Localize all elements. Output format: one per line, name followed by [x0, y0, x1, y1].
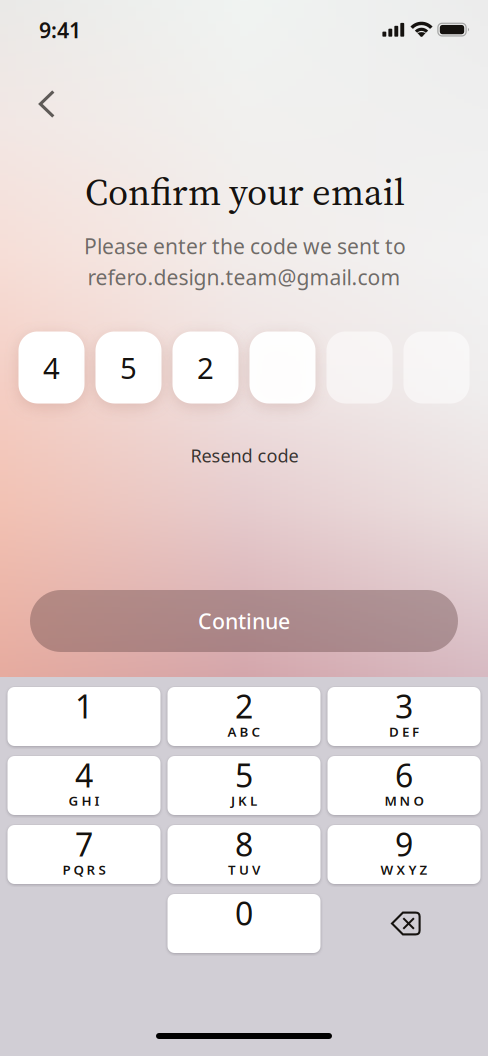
staticText: 3	[395, 684, 413, 728]
button[interactable]: Resend code	[172, 434, 316, 477]
button[interactable]: 9	[327, 825, 480, 884]
staticText: 6	[395, 753, 413, 797]
staticText: 9:41	[39, 15, 81, 45]
staticText: T U V	[228, 860, 260, 879]
button[interactable]: 8	[167, 825, 320, 884]
staticText: P Q R S	[62, 860, 105, 879]
staticText: 8	[235, 822, 253, 866]
staticText: J K L	[231, 791, 257, 810]
staticText: 4	[75, 753, 93, 797]
button[interactable]: Continue	[30, 590, 458, 652]
staticText: M N O	[384, 791, 423, 810]
staticText: 5	[235, 753, 253, 797]
staticText: 4	[43, 347, 60, 387]
staticText: 7	[75, 822, 93, 866]
staticText: W X Y Z	[380, 860, 427, 879]
staticText: 9	[395, 822, 413, 866]
staticText: 1	[75, 684, 93, 728]
staticText: refero.design.team@gmail.com	[87, 263, 400, 291]
button[interactable]: 3	[327, 687, 480, 746]
staticText: Resend code	[190, 443, 298, 468]
staticText: A B C	[227, 722, 260, 741]
staticText: 2	[235, 684, 253, 728]
staticText: 0	[235, 891, 253, 935]
button[interactable]: 0	[167, 894, 320, 953]
button[interactable]: 5	[167, 756, 320, 815]
staticText: 2	[197, 347, 214, 387]
button[interactable]: 2	[167, 687, 320, 746]
button[interactable]: 7	[7, 825, 160, 884]
button[interactable]: 1	[7, 687, 160, 746]
staticText: D E F	[389, 722, 419, 741]
staticText: Confirm your email	[85, 166, 405, 218]
button[interactable]: Delete	[327, 894, 480, 953]
button[interactable]: 4	[7, 756, 160, 815]
button[interactable]: 6	[327, 756, 480, 815]
staticText: Continue	[198, 606, 290, 636]
staticText: 5	[120, 347, 137, 387]
staticText: G H I	[68, 791, 99, 810]
staticText: Please enter the code we sent to	[84, 232, 406, 260]
button[interactable]: Back	[20, 73, 72, 135]
